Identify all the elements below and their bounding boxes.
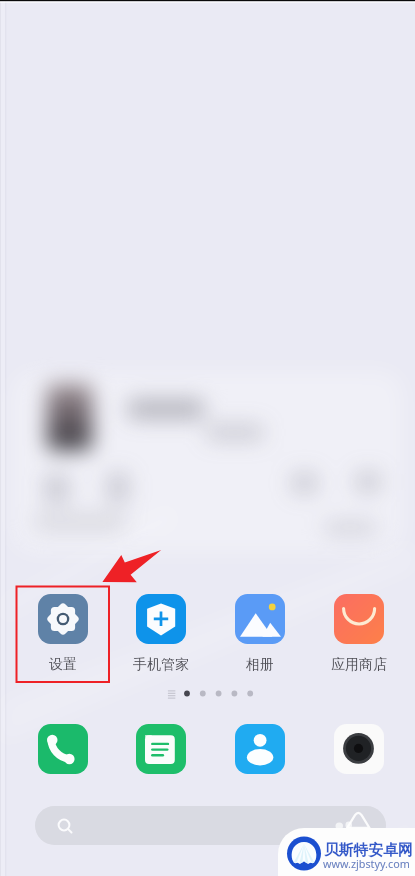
button[interactable]: 电话 [38, 724, 88, 774]
staticText: 设置 [49, 656, 77, 674]
staticText: 贝斯特安卓网 [324, 841, 413, 860]
staticText: 手机管家 [133, 656, 189, 674]
button[interactable]: Search [35, 806, 386, 845]
button[interactable]: 相册 [211, 590, 309, 674]
staticText: 应用商店 [331, 656, 387, 674]
button[interactable]: 信息 [136, 724, 186, 774]
button[interactable]: 手机管家 [112, 590, 210, 674]
button[interactable]: 联系人 [235, 724, 285, 774]
staticText: www.zjbstyy.com [323, 856, 410, 871]
button[interactable]: 应用商店 [310, 590, 408, 674]
staticText: 相册 [246, 656, 274, 674]
button[interactable]: 设置 [14, 590, 112, 674]
button[interactable]: 相机 [334, 724, 384, 774]
button[interactable]: Page indicator [160, 684, 260, 704]
